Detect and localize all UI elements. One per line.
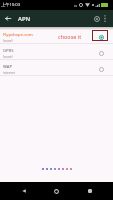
- staticText: Flypshope.com: [3, 32, 33, 38]
- button[interactable]: Recent apps: [81, 182, 98, 200]
- button[interactable]: Home: [48, 182, 65, 200]
- button[interactable]: Navigate back: [0, 10, 16, 27]
- staticText: WAP: [3, 64, 12, 70]
- button[interactable]: GPRS: [0, 44, 113, 60]
- staticText: APN: [18, 15, 31, 23]
- button[interactable]: Add new APN: [89, 10, 104, 27]
- button[interactable]: WAP: [0, 60, 113, 76]
- staticText: choose it: [58, 33, 82, 40]
- staticText: 上午10:03: [1, 2, 21, 8]
- staticText: (none): [3, 55, 13, 59]
- staticText: GPRS: [3, 48, 14, 54]
- button[interactable]: Back: [15, 182, 32, 200]
- button[interactable]: More options: [99, 10, 111, 27]
- button[interactable]: Flypshope.com: [0, 28, 113, 44]
- staticText: internet: [3, 71, 15, 75]
- staticText: (none): [3, 39, 13, 43]
